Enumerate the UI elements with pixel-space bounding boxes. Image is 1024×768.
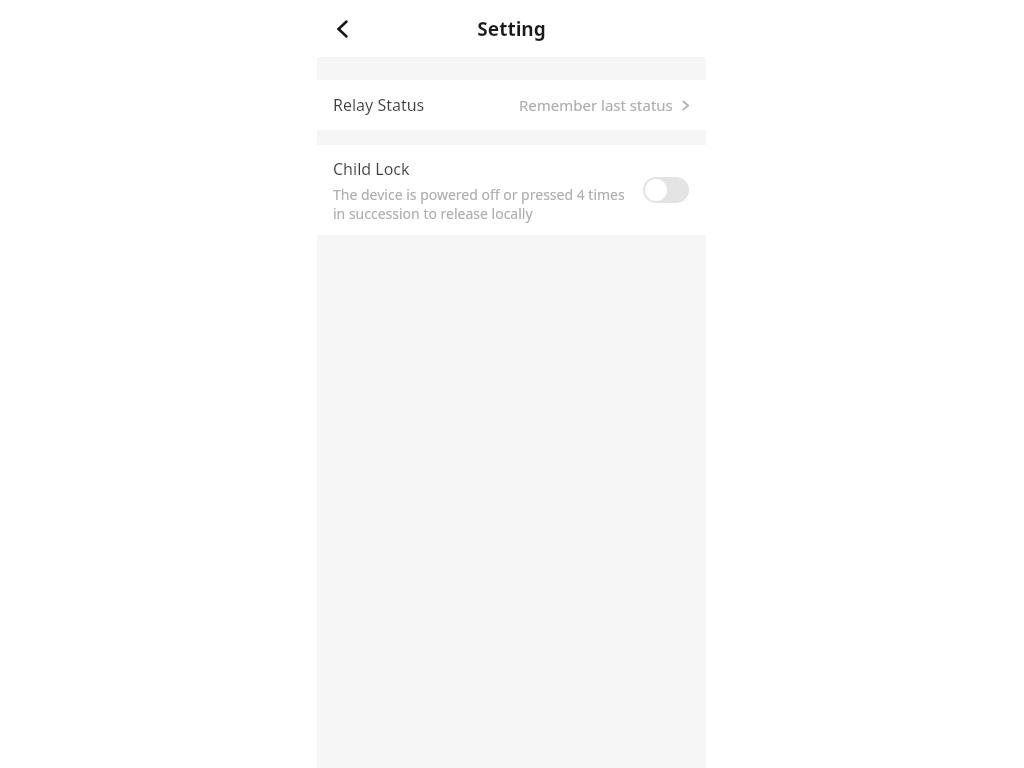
button[interactable]: Relay Status (317, 80, 706, 130)
staticText: Child Lock (333, 158, 410, 180)
button[interactable]: Child Lock toggle (643, 177, 689, 203)
button[interactable]: Back (323, 9, 363, 49)
staticText: The device is powered off or pressed 4 t… (333, 185, 631, 223)
button[interactable]: Child Lock (317, 145, 706, 235)
staticText: Relay Status (333, 94, 425, 116)
staticText: Remember last status (519, 95, 673, 115)
staticText: Setting (477, 16, 546, 42)
